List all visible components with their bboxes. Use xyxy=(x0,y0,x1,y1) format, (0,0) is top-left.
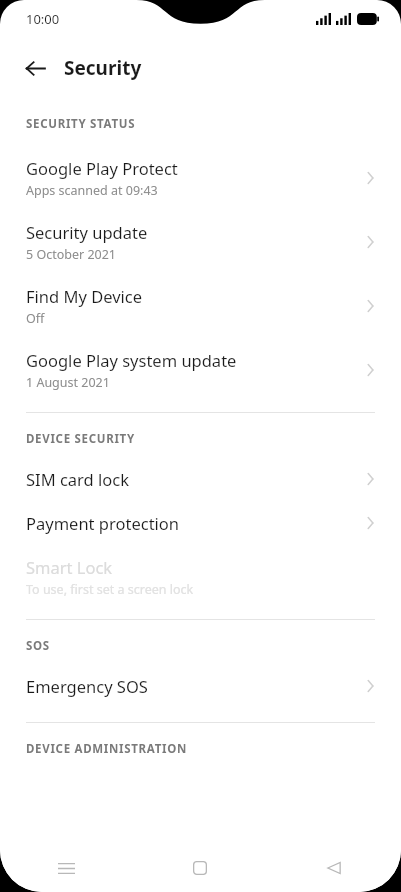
staticText: SIM card lock xyxy=(26,468,129,490)
staticText: Security xyxy=(64,55,142,81)
staticText: DEVICE SECURITY xyxy=(26,431,401,447)
button[interactable]: SIM card lock xyxy=(0,457,401,501)
staticText: Find My Device xyxy=(26,285,143,307)
staticText: Smart Lock xyxy=(26,556,113,578)
staticText: SOS xyxy=(26,638,401,654)
button[interactable]: Security update xyxy=(0,210,401,274)
staticText: 5 October 2021 xyxy=(26,246,116,263)
staticText: Google Play system update xyxy=(26,349,237,371)
button[interactable]: Home xyxy=(133,844,267,892)
staticText: DEVICE ADMINISTRATION xyxy=(26,741,401,757)
staticText: 10:00 xyxy=(26,10,60,28)
button: Smart Lock xyxy=(0,545,401,609)
staticText: Google Play Protect xyxy=(26,157,178,179)
button[interactable]: Emergency SOS xyxy=(0,664,401,708)
staticText: Payment protection xyxy=(26,512,180,534)
staticText: SECURITY STATUS xyxy=(26,116,401,132)
button[interactable]: Google Play system update xyxy=(0,338,401,402)
button[interactable]: Payment protection xyxy=(0,501,401,545)
button[interactable]: Back xyxy=(267,844,401,892)
staticText: To use, first set a screen lock xyxy=(26,581,194,598)
button[interactable]: Google Play Protect xyxy=(0,146,401,210)
staticText: Emergency SOS xyxy=(26,675,148,697)
staticText: Apps scanned at 09:43 xyxy=(26,182,158,199)
staticText: Security update xyxy=(26,221,148,243)
staticText: 1 August 2021 xyxy=(26,374,110,391)
button[interactable]: Find My Device xyxy=(0,274,401,338)
staticText: Off xyxy=(26,310,45,327)
button[interactable]: Back xyxy=(14,47,56,89)
button[interactable]: Recent apps xyxy=(0,844,133,892)
